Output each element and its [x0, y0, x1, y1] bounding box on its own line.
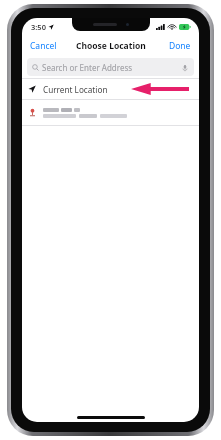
staticText: Choose Location	[76, 40, 146, 52]
staticText: Search or Enter Address	[42, 62, 133, 73]
button[interactable]: Current Location	[22, 79, 199, 99]
staticText: 3:50	[31, 22, 46, 32]
button[interactable]: Cancel	[22, 37, 65, 55]
staticText: Current Location	[43, 84, 108, 95]
button[interactable]	[22, 100, 199, 125]
button[interactable]: Voice search	[180, 63, 189, 72]
staticText: Done	[169, 40, 191, 52]
button[interactable]: Search or Enter Address	[27, 58, 194, 76]
staticText: Cancel	[30, 40, 57, 52]
button[interactable]: Done	[161, 37, 199, 55]
